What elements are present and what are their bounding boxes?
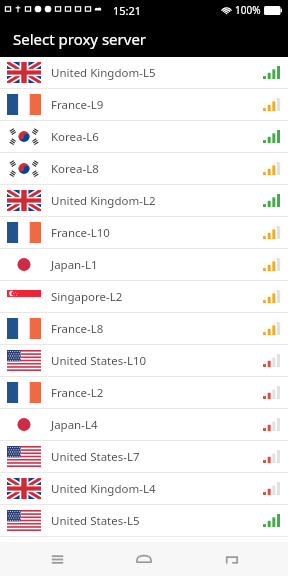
button[interactable]: Singapore-L2 <box>0 281 288 313</box>
staticText: United States-L10 <box>51 353 147 369</box>
staticText: France-L10 <box>51 225 110 241</box>
button[interactable]: Recent apps <box>27 542 87 576</box>
button[interactable]: Japan-L1 <box>0 249 288 281</box>
button[interactable]: France-L9 <box>0 89 288 121</box>
button[interactable]: France-L2 <box>0 377 288 409</box>
staticText: Japan-L4 <box>51 417 98 433</box>
staticText: United Kingdom-L5 <box>51 65 156 81</box>
staticText: France-L8 <box>51 321 104 337</box>
button[interactable]: United States-L10 <box>0 345 288 377</box>
staticText: 100% <box>235 3 261 17</box>
button[interactable]: United Kingdom-L4 <box>0 473 288 505</box>
button[interactable]: United Kingdom-L2 <box>0 185 288 217</box>
staticText: United Kingdom-L2 <box>51 193 156 209</box>
staticText: 15:21 <box>113 3 142 18</box>
button[interactable]: Back <box>201 542 261 576</box>
staticText: United States-L7 <box>51 449 140 465</box>
staticText: Korea-L6 <box>51 129 99 145</box>
button[interactable]: United States-L5 <box>0 505 288 537</box>
staticText: France-L2 <box>51 385 104 401</box>
staticText: United Kingdom-L4 <box>51 481 156 497</box>
button[interactable]: Home <box>114 542 174 576</box>
button[interactable]: United States-L7 <box>0 441 288 473</box>
staticText: Korea-L8 <box>51 161 99 177</box>
staticText: Select proxy server <box>13 29 147 49</box>
staticText: Singapore-L2 <box>51 289 123 305</box>
button[interactable]: France-L8 <box>0 313 288 345</box>
button[interactable]: United Kingdom-L5 <box>0 57 288 89</box>
staticText: United States-L5 <box>51 513 140 529</box>
button[interactable]: Korea-L8 <box>0 153 288 185</box>
button[interactable]: Korea-L6 <box>0 121 288 153</box>
staticText: France-L9 <box>51 97 104 113</box>
staticText: Japan-L1 <box>51 257 98 273</box>
button[interactable]: Japan-L4 <box>0 409 288 441</box>
button[interactable]: France-L10 <box>0 217 288 249</box>
